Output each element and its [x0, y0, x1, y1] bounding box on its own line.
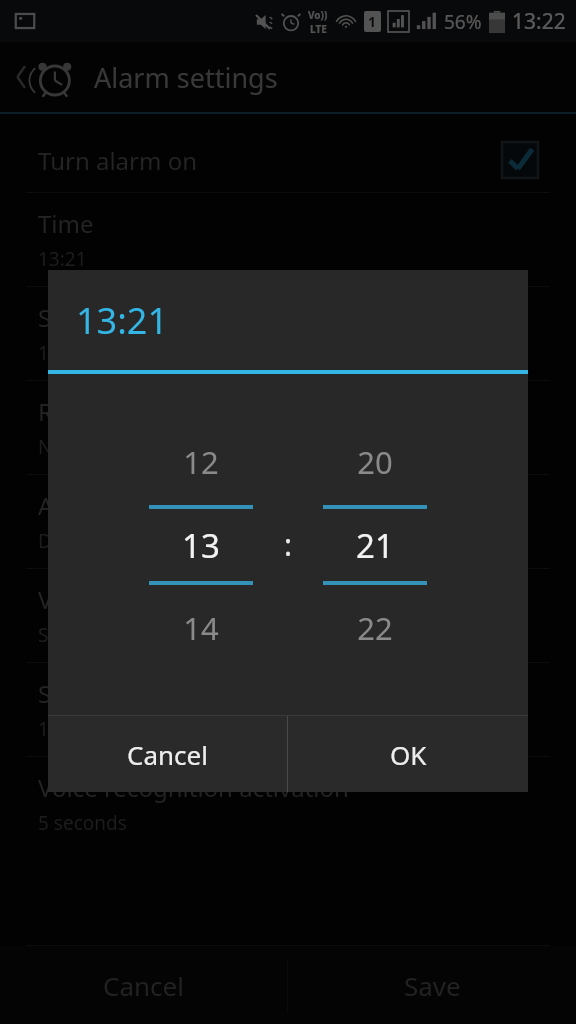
staticText: 13:21 — [76, 296, 169, 345]
button[interactable]: Hour next — [141, 599, 261, 657]
staticText: Voice recognition activation — [38, 771, 349, 804]
staticText: Vo)) — [308, 8, 328, 22]
staticText: Vibration — [38, 583, 141, 616]
staticText: 22 — [357, 607, 393, 649]
staticText: OK — [390, 737, 427, 772]
staticText: 56% — [444, 9, 482, 35]
staticText: Time — [38, 207, 94, 240]
button[interactable]: Turn alarm on — [0, 128, 576, 192]
button[interactable]: Cancel — [48, 716, 287, 792]
staticText: Alarm settings — [94, 59, 278, 96]
staticText: Cancel — [127, 737, 208, 772]
button[interactable]: Turn alarm on — [502, 142, 538, 178]
staticText: Default — [38, 528, 104, 554]
button[interactable]: Snooze — [0, 287, 576, 380]
button[interactable]: Minute — [315, 509, 435, 581]
staticText: 1 — [368, 12, 377, 31]
staticText: 14 — [183, 607, 219, 649]
staticText: Repeat weekly — [38, 395, 201, 428]
button[interactable]: Hour previous — [141, 433, 261, 491]
staticText: 13:21 — [38, 246, 87, 272]
button[interactable]: Hour — [141, 509, 261, 581]
button[interactable]: Repeat weekly — [0, 381, 576, 474]
button[interactable]: Vibration — [0, 569, 576, 662]
staticText: 20 — [357, 441, 393, 483]
staticText: Snooze — [38, 677, 120, 710]
staticText: 12 — [183, 441, 219, 483]
button[interactable]: Voice recognition activation — [0, 757, 576, 850]
staticText: Turn alarm on — [38, 144, 198, 177]
staticText: : — [284, 524, 293, 565]
staticText: Short — [38, 622, 87, 648]
button[interactable]: OK — [288, 716, 528, 792]
staticText: Snooze — [38, 301, 120, 334]
button[interactable]: Minute next — [315, 599, 435, 657]
staticText: 5 seconds — [38, 810, 127, 836]
button[interactable]: Alarm tone — [0, 475, 576, 568]
button[interactable]: Snooze — [0, 663, 576, 756]
staticText: 21 — [356, 523, 394, 568]
button[interactable]: Time — [0, 193, 576, 286]
staticText: Alarm tone — [38, 489, 164, 522]
staticText: LTE — [310, 22, 327, 36]
staticText: Never — [38, 434, 91, 460]
staticText: Save — [404, 968, 461, 1003]
staticText: 13 — [182, 523, 220, 568]
staticText: 10 minutes — [38, 340, 138, 366]
button[interactable]: Save — [288, 946, 576, 1024]
button[interactable]: Minute previous — [315, 433, 435, 491]
button[interactable]: Cancel — [0, 946, 287, 1024]
button[interactable]: Navigate up — [0, 47, 82, 107]
staticText: Cancel — [103, 968, 184, 1003]
staticText: 10 minutes — [38, 716, 138, 742]
staticText: 13:22 — [512, 7, 566, 36]
